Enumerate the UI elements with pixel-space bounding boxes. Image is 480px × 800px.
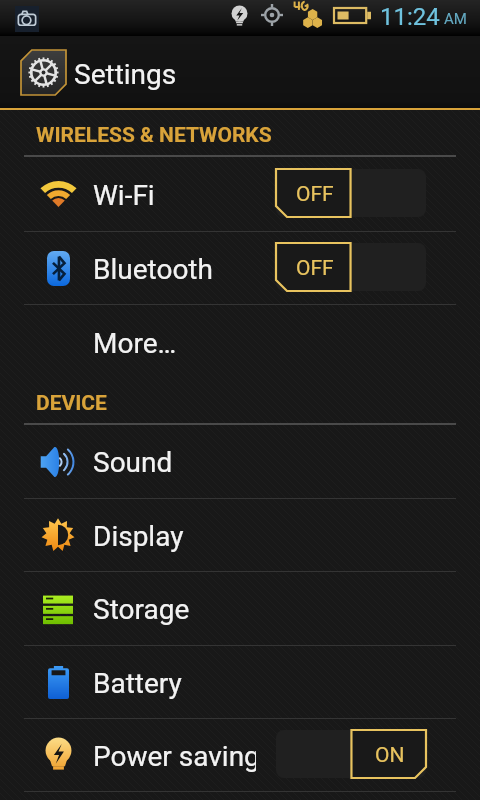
- staticText: Storage: [93, 593, 256, 626]
- staticText: Settings: [74, 58, 177, 91]
- staticText: OFF: [296, 182, 334, 207]
- staticText: Display: [93, 520, 256, 553]
- button[interactable]: Wi-Fi: [0, 157, 480, 231]
- button[interactable]: Power saving: [0, 719, 480, 791]
- button[interactable]: Storage: [0, 572, 480, 645]
- staticText: Wi-Fi: [93, 179, 256, 212]
- staticText: Power saving: [93, 740, 256, 773]
- staticText: Sound: [93, 446, 256, 479]
- button[interactable]: Switch on: [276, 730, 426, 778]
- staticText: OFF: [296, 256, 334, 281]
- button[interactable]: More…: [0, 305, 480, 379]
- button[interactable]: Sound: [0, 425, 480, 498]
- staticText: DEVICE: [36, 391, 107, 416]
- staticText: AM: [444, 10, 467, 28]
- staticText: Battery: [93, 667, 256, 700]
- button[interactable]: Switch off: [276, 169, 426, 217]
- button[interactable]: Display: [0, 499, 480, 571]
- staticText: More…: [93, 327, 256, 360]
- staticText: ON: [375, 743, 405, 768]
- staticText: WIRELESS & NETWORKS: [36, 123, 272, 148]
- button[interactable]: Bluetooth: [0, 232, 480, 304]
- staticText: Bluetooth: [93, 253, 256, 286]
- staticText: 11:24: [380, 3, 440, 31]
- button[interactable]: Battery: [0, 646, 480, 718]
- button[interactable]: Settings home: [21, 50, 66, 95]
- button[interactable]: Switch off: [276, 243, 426, 291]
